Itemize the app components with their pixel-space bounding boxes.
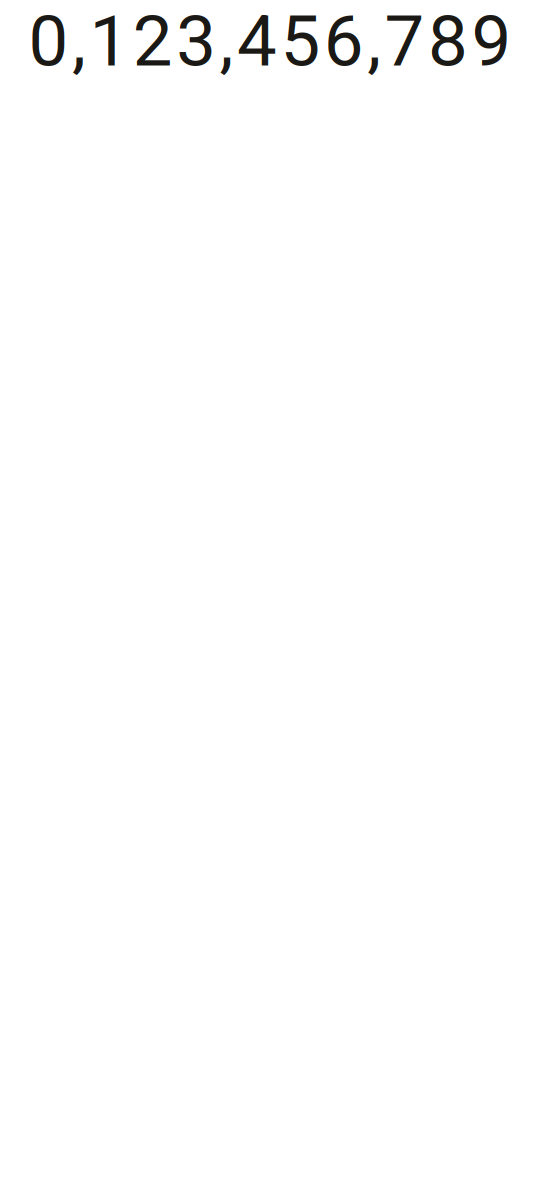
staticText: 7	[385, 0, 425, 83]
staticText: 3	[176, 0, 216, 83]
staticText: 5	[280, 0, 320, 83]
staticText: 2	[133, 0, 173, 83]
staticText: 4	[237, 0, 277, 83]
staticText: ,	[72, 0, 86, 83]
staticText: 9	[471, 0, 511, 83]
staticText: 6	[324, 0, 364, 83]
staticText: 0	[29, 0, 69, 83]
staticText: ,	[220, 0, 234, 83]
staticText: 8	[428, 0, 468, 83]
staticText: ,	[367, 0, 381, 83]
staticText: 1	[89, 0, 129, 83]
